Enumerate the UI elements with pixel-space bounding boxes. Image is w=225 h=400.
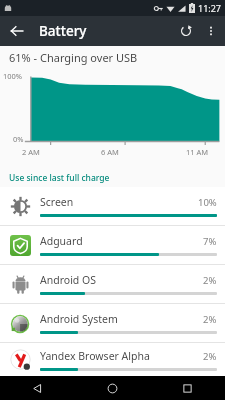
staticText: Use since last full charge xyxy=(9,172,110,184)
staticText: 2% xyxy=(203,274,217,287)
staticText: 10% xyxy=(198,196,217,209)
staticText: Adguard xyxy=(40,234,203,248)
staticText: 61% - Charging over USB xyxy=(9,50,138,65)
staticText: 2 AM xyxy=(22,147,40,157)
staticText: 11 AM xyxy=(186,147,209,157)
button[interactable]: Refresh xyxy=(173,18,199,44)
staticText: 11:27 xyxy=(198,2,222,14)
staticText: Screen xyxy=(40,195,198,209)
staticText: 2% xyxy=(203,350,217,363)
staticText: Yandex Browser Alpha xyxy=(40,349,203,363)
button[interactable]: Adguard xyxy=(0,226,225,264)
staticText: 2% xyxy=(203,313,217,326)
staticText: Android System xyxy=(40,312,203,326)
button[interactable]: Navigate up xyxy=(4,18,30,44)
button[interactable]: Android OS xyxy=(0,265,225,303)
button[interactable]: Android System xyxy=(0,304,225,342)
staticText: Android OS xyxy=(40,273,203,287)
staticText: 6 AM xyxy=(101,147,119,157)
button[interactable]: More options xyxy=(199,19,223,43)
button[interactable]: Recent apps xyxy=(150,376,225,400)
button[interactable]: Screen xyxy=(0,187,225,225)
button[interactable]: Back xyxy=(0,376,75,400)
button[interactable]: Yandex Browser Alpha xyxy=(0,343,225,376)
staticText: 100% xyxy=(3,71,23,81)
staticText: Battery xyxy=(39,22,87,40)
staticText: 7% xyxy=(203,235,217,248)
staticText: 0% xyxy=(13,134,24,144)
button[interactable]: Home xyxy=(75,376,150,400)
